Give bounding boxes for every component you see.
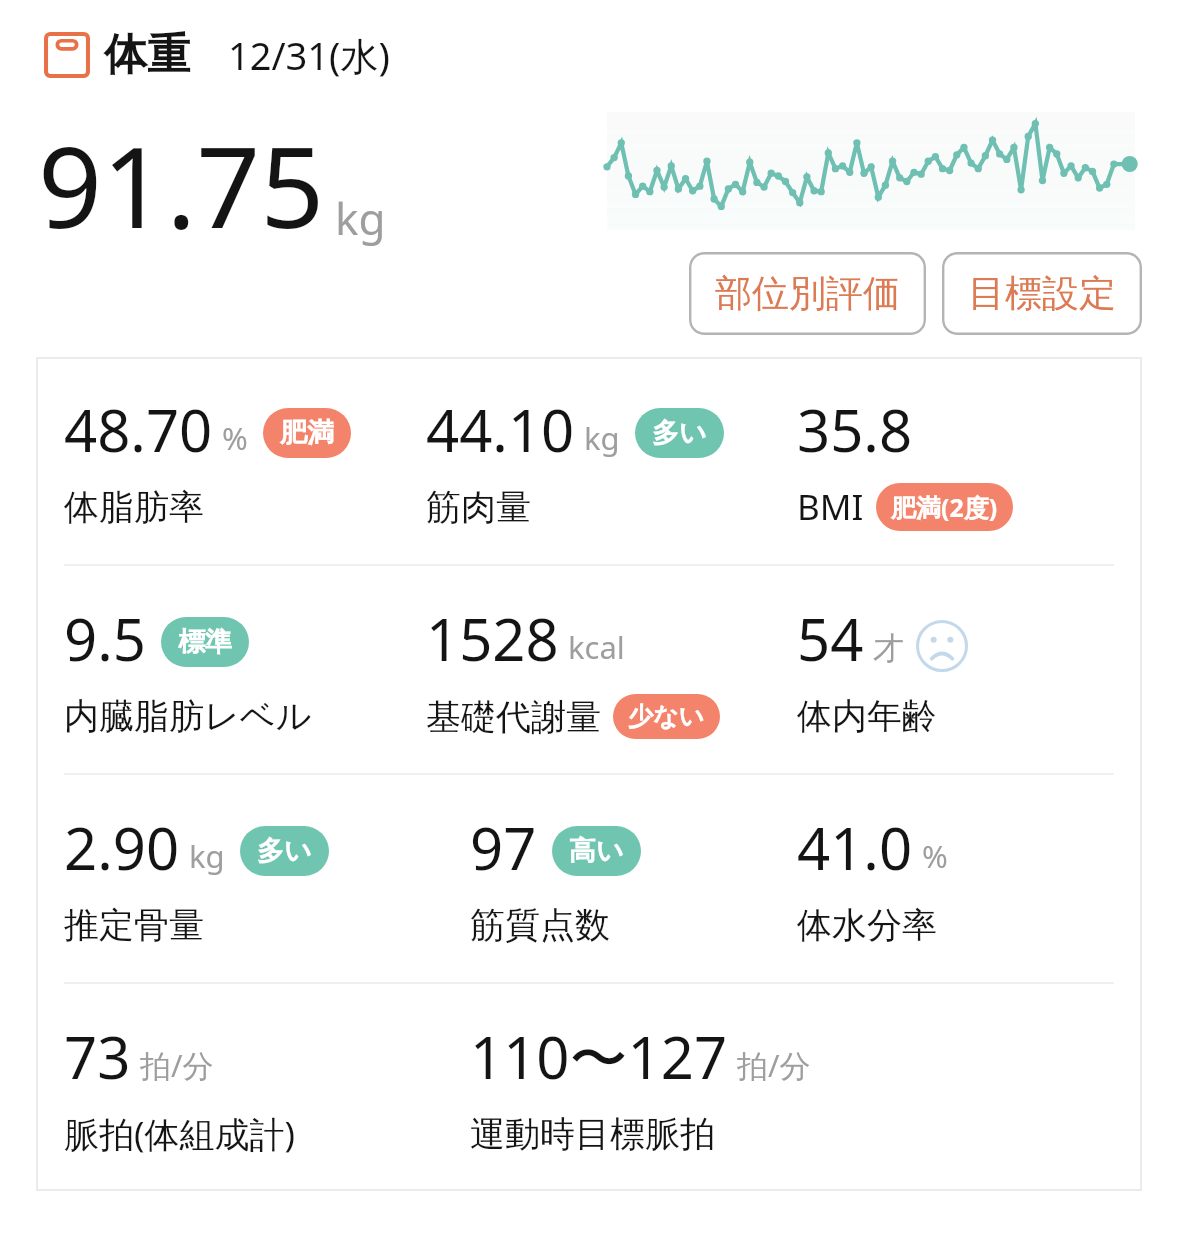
button[interactable]: 48.70 — [36, 390, 426, 532]
staticText: 筋質点数 — [470, 903, 610, 947]
button[interactable]: 44.10 — [426, 390, 797, 532]
staticText: 2.90 — [64, 808, 180, 884]
button[interactable]: 目標設定 — [942, 252, 1142, 335]
button[interactable]: 2.90 — [36, 808, 426, 950]
button[interactable]: 1528 — [426, 599, 797, 741]
staticText: 48.70 — [64, 390, 213, 466]
staticText: 推定骨量 — [64, 903, 204, 947]
button[interactable]: 54 — [797, 599, 1142, 741]
staticText: 97 — [470, 808, 537, 884]
staticText: BMI — [797, 483, 864, 531]
staticText: 部位別評価 — [715, 270, 900, 317]
staticText: 内臓脂肪レベル — [64, 694, 312, 738]
button[interactable]: 97 — [426, 808, 797, 950]
button[interactable]: 41.0 — [797, 808, 1142, 950]
staticText: 41.0 — [797, 808, 913, 884]
staticText: 拍/分 — [140, 1044, 214, 1086]
staticText: 体内年齢 — [797, 694, 937, 738]
staticText: % — [922, 835, 948, 877]
staticText: 脈拍(体組成計) — [64, 1110, 296, 1158]
other: Body age rating — [916, 620, 968, 672]
button[interactable]: 部位別評価 — [689, 252, 926, 335]
staticText: 73 — [64, 1017, 131, 1093]
staticText: 少ない — [628, 701, 705, 732]
staticText: 体水分率 — [797, 903, 937, 947]
staticText: % — [222, 417, 248, 459]
staticText: 12/31(水) — [228, 29, 390, 81]
staticText: kg — [189, 835, 225, 877]
staticText: 多い — [257, 834, 312, 868]
staticText: 運動時目標脈拍 — [470, 1112, 715, 1156]
staticText: 9.5 — [64, 599, 146, 675]
staticText: kg — [584, 417, 620, 459]
staticText: 拍/分 — [737, 1044, 811, 1086]
button[interactable]: 110〜127 — [426, 1017, 1142, 1159]
button[interactable]: 35.8 — [797, 390, 1142, 532]
staticText: 多い — [652, 416, 707, 450]
staticText: 肥満(2度) — [891, 490, 998, 524]
staticText: 高い — [569, 834, 624, 868]
staticText: 肥満 — [280, 416, 334, 450]
staticText: kg — [335, 188, 386, 248]
staticText: 体脂肪率 — [64, 485, 204, 529]
staticText: 標準 — [178, 625, 232, 659]
other: Weight — [44, 32, 90, 78]
staticText: 才 — [873, 629, 904, 668]
staticText: 筋肉量 — [426, 485, 531, 529]
button[interactable]: 9.5 — [36, 599, 426, 741]
staticText: 91.75 — [38, 108, 325, 261]
staticText: 基礎代謝量 — [426, 695, 601, 739]
staticText: 110〜127 — [470, 1017, 728, 1093]
button[interactable]: 73 — [36, 1017, 426, 1159]
staticText: 目標設定 — [968, 270, 1116, 317]
staticText: 1528 — [426, 599, 559, 675]
staticText: 44.10 — [426, 390, 575, 466]
staticText: 54 — [797, 599, 864, 675]
staticText: 35.8 — [797, 390, 913, 466]
staticText: 体重 — [104, 28, 190, 82]
button[interactable]: Weight — [44, 28, 390, 82]
staticText: kcal — [568, 626, 625, 668]
